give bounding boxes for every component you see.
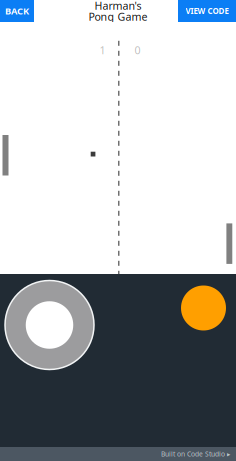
staticText: Built on Code Studio ▸ <box>161 450 230 458</box>
button[interactable]: VIEW CODE <box>178 0 236 22</box>
staticText: 1 <box>99 43 105 57</box>
staticText: Pong Game <box>88 9 147 24</box>
staticText: BACK <box>5 5 29 17</box>
button[interactable]: Joystick <box>4 279 95 370</box>
staticText: VIEW CODE <box>185 6 228 16</box>
button[interactable]: Fire <box>181 285 226 330</box>
button[interactable]: BACK <box>0 0 34 22</box>
staticText: Harman's <box>94 0 141 13</box>
staticText: 0 <box>134 43 140 57</box>
